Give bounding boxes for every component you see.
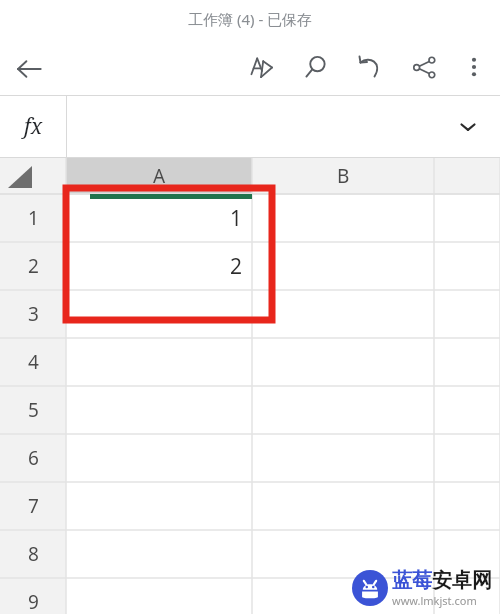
button[interactable]: 9 (0, 578, 66, 614)
button[interactable]: Share (404, 47, 444, 87)
button[interactable]: Undo (350, 47, 390, 87)
staticText: 9 (28, 589, 39, 614)
button[interactable]: 1 (66, 194, 252, 242)
staticText: www.lmkjst.com (392, 593, 477, 608)
staticText: 4 (28, 349, 39, 375)
staticText: 安卓网 (432, 568, 492, 593)
staticText: fx (24, 112, 43, 141)
button[interactable]: 3 (0, 290, 66, 338)
staticText: 5 (28, 397, 39, 423)
staticText: A (153, 163, 166, 189)
staticText: 2 (229, 252, 242, 281)
staticText: 3 (28, 301, 39, 327)
button[interactable]: 7 (0, 482, 66, 530)
button[interactable]: More options (454, 47, 494, 87)
staticText: 7 (28, 493, 39, 519)
staticText: 1 (229, 204, 242, 233)
button[interactable]: Back (8, 48, 50, 90)
button[interactable]: Edit text (242, 47, 282, 87)
button[interactable]: 1 (0, 194, 66, 242)
staticText: 6 (28, 445, 39, 471)
staticText: 1 (28, 205, 39, 231)
staticText: 8 (28, 541, 39, 567)
button[interactable]: B (252, 158, 434, 194)
button[interactable]: 2 (0, 242, 66, 290)
button[interactable]: 2 (66, 242, 252, 290)
button[interactable]: Insert function (0, 95, 66, 158)
staticText: B (337, 163, 350, 189)
button[interactable]: Search (296, 47, 336, 87)
staticText: 蓝莓 (392, 568, 432, 593)
button[interactable]: A (66, 158, 252, 194)
button[interactable] (0, 158, 500, 614)
staticText: 工作簿 (4) - 已保存 (188, 9, 313, 29)
button[interactable]: Expand formula bar (452, 111, 484, 143)
staticText: 2 (28, 253, 39, 279)
button[interactable]: 8 (0, 530, 66, 578)
button[interactable]: 6 (0, 434, 66, 482)
button[interactable]: 4 (0, 338, 66, 386)
button[interactable]: Expand formula bar (67, 95, 500, 158)
button[interactable]: 5 (0, 386, 66, 434)
